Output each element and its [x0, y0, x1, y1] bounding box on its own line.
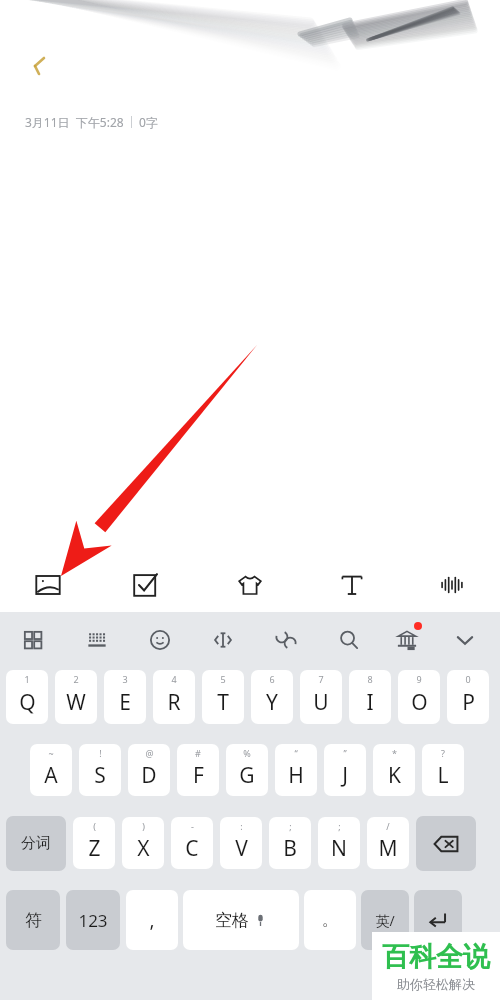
staticText: , — [149, 907, 155, 933]
button[interactable]: ~ — [30, 744, 72, 796]
button[interactable]: - — [171, 817, 213, 869]
staticText: 4 — [171, 673, 177, 685]
staticText: 。 — [322, 910, 338, 930]
button[interactable]: Clipboard — [266, 620, 306, 660]
staticText: Z — [88, 834, 101, 863]
button[interactable]: Text format — [329, 562, 375, 608]
button[interactable]: 4 — [153, 670, 195, 724]
button[interactable]: 5 — [202, 670, 244, 724]
staticText: T — [217, 688, 229, 717]
button[interactable]: “ — [275, 744, 317, 796]
staticText: 分词 — [21, 834, 51, 853]
staticText: 3月11日 下午5:28 — [25, 114, 124, 130]
button[interactable]: / — [367, 817, 409, 869]
button[interactable]: Search — [329, 620, 369, 660]
staticText: U — [313, 688, 329, 717]
button[interactable]: Style — [227, 562, 273, 608]
staticText: J — [342, 761, 348, 790]
staticText: 3 — [122, 673, 128, 685]
staticText: K — [388, 761, 401, 790]
staticText: 0字 — [139, 114, 158, 130]
button[interactable]: 符 — [6, 890, 60, 950]
button[interactable]: : — [220, 817, 262, 869]
staticText: E — [119, 688, 131, 717]
button[interactable]: Hide keyboard — [445, 620, 485, 660]
button[interactable]: 8 — [349, 670, 391, 724]
staticText: “ — [294, 747, 298, 759]
staticText: 英/ — [375, 911, 395, 930]
staticText: 9 — [416, 673, 422, 685]
staticText: # — [195, 747, 201, 759]
button[interactable]: ; — [269, 817, 311, 869]
button[interactable]: Keyboard layout — [77, 620, 117, 660]
staticText: 5 — [220, 673, 226, 685]
staticText: P — [462, 688, 475, 717]
staticText: Y — [266, 688, 278, 717]
button[interactable]: 0 — [447, 670, 489, 724]
staticText: : — [240, 820, 243, 832]
staticText: 7 — [318, 673, 324, 685]
button[interactable]: # — [177, 744, 219, 796]
button[interactable]: 123 — [66, 890, 120, 950]
staticText: N — [331, 834, 347, 863]
button[interactable]: , — [126, 890, 178, 950]
staticText: 2 — [73, 673, 79, 685]
staticText: 百科全说 — [382, 940, 490, 974]
button[interactable]: 9 — [398, 670, 440, 724]
staticText: 空格 — [215, 910, 249, 931]
button[interactable]: Cursor move — [203, 620, 243, 660]
staticText: - — [191, 820, 194, 832]
staticText: ? — [441, 747, 445, 759]
staticText: W — [66, 688, 86, 717]
button[interactable]: Resources — [387, 620, 427, 660]
staticText: X — [137, 834, 150, 863]
button[interactable]: 7 — [300, 670, 342, 724]
staticText: 0 — [465, 673, 471, 685]
staticText: G — [239, 761, 255, 790]
button[interactable]: Enter — [414, 890, 462, 950]
staticText: D — [141, 761, 157, 790]
button[interactable]: Insert image — [25, 562, 71, 608]
staticText: ; — [338, 820, 341, 832]
staticText: ! — [99, 747, 102, 759]
button[interactable]: Checklist — [122, 562, 168, 608]
button[interactable]: % — [226, 744, 268, 796]
staticText: M — [378, 834, 398, 863]
staticText: 助你轻松解决 — [397, 976, 475, 992]
button[interactable]: 空格 — [183, 890, 299, 950]
staticText: ( — [93, 820, 96, 832]
staticText: H — [288, 761, 304, 790]
button[interactable]: 英/ — [361, 890, 409, 950]
button[interactable]: Backspace — [416, 816, 476, 871]
button[interactable]: ) — [122, 817, 164, 869]
staticText: 8 — [367, 673, 373, 685]
staticText: 6 — [269, 673, 275, 685]
button[interactable]: ? — [422, 744, 464, 796]
button[interactable]: 分词 — [6, 816, 66, 871]
button[interactable]: 1 — [6, 670, 48, 724]
button[interactable]: 。 — [304, 890, 356, 950]
staticText: * — [392, 747, 397, 759]
button[interactable]: 6 — [251, 670, 293, 724]
staticText: R — [167, 688, 181, 717]
button[interactable]: 3 — [104, 670, 146, 724]
staticText: S — [94, 761, 106, 790]
staticText: L — [437, 761, 449, 790]
staticText: O — [411, 688, 428, 717]
button[interactable]: ( — [73, 817, 115, 869]
button[interactable]: @ — [128, 744, 170, 796]
button[interactable]: ; — [318, 817, 360, 869]
button[interactable]: * — [373, 744, 415, 796]
button[interactable]: Voice — [429, 562, 475, 608]
staticText: V — [235, 834, 248, 863]
staticText: ; — [289, 820, 292, 832]
button[interactable]: ! — [79, 744, 121, 796]
staticText: 123 — [78, 909, 108, 932]
button[interactable]: Emoji — [140, 620, 180, 660]
staticText: A — [44, 761, 58, 790]
button[interactable]: ” — [324, 744, 366, 796]
staticText: Q — [19, 688, 36, 717]
button[interactable]: 2 — [55, 670, 97, 724]
staticText: ) — [142, 820, 145, 832]
button[interactable]: Panel — [13, 620, 53, 660]
